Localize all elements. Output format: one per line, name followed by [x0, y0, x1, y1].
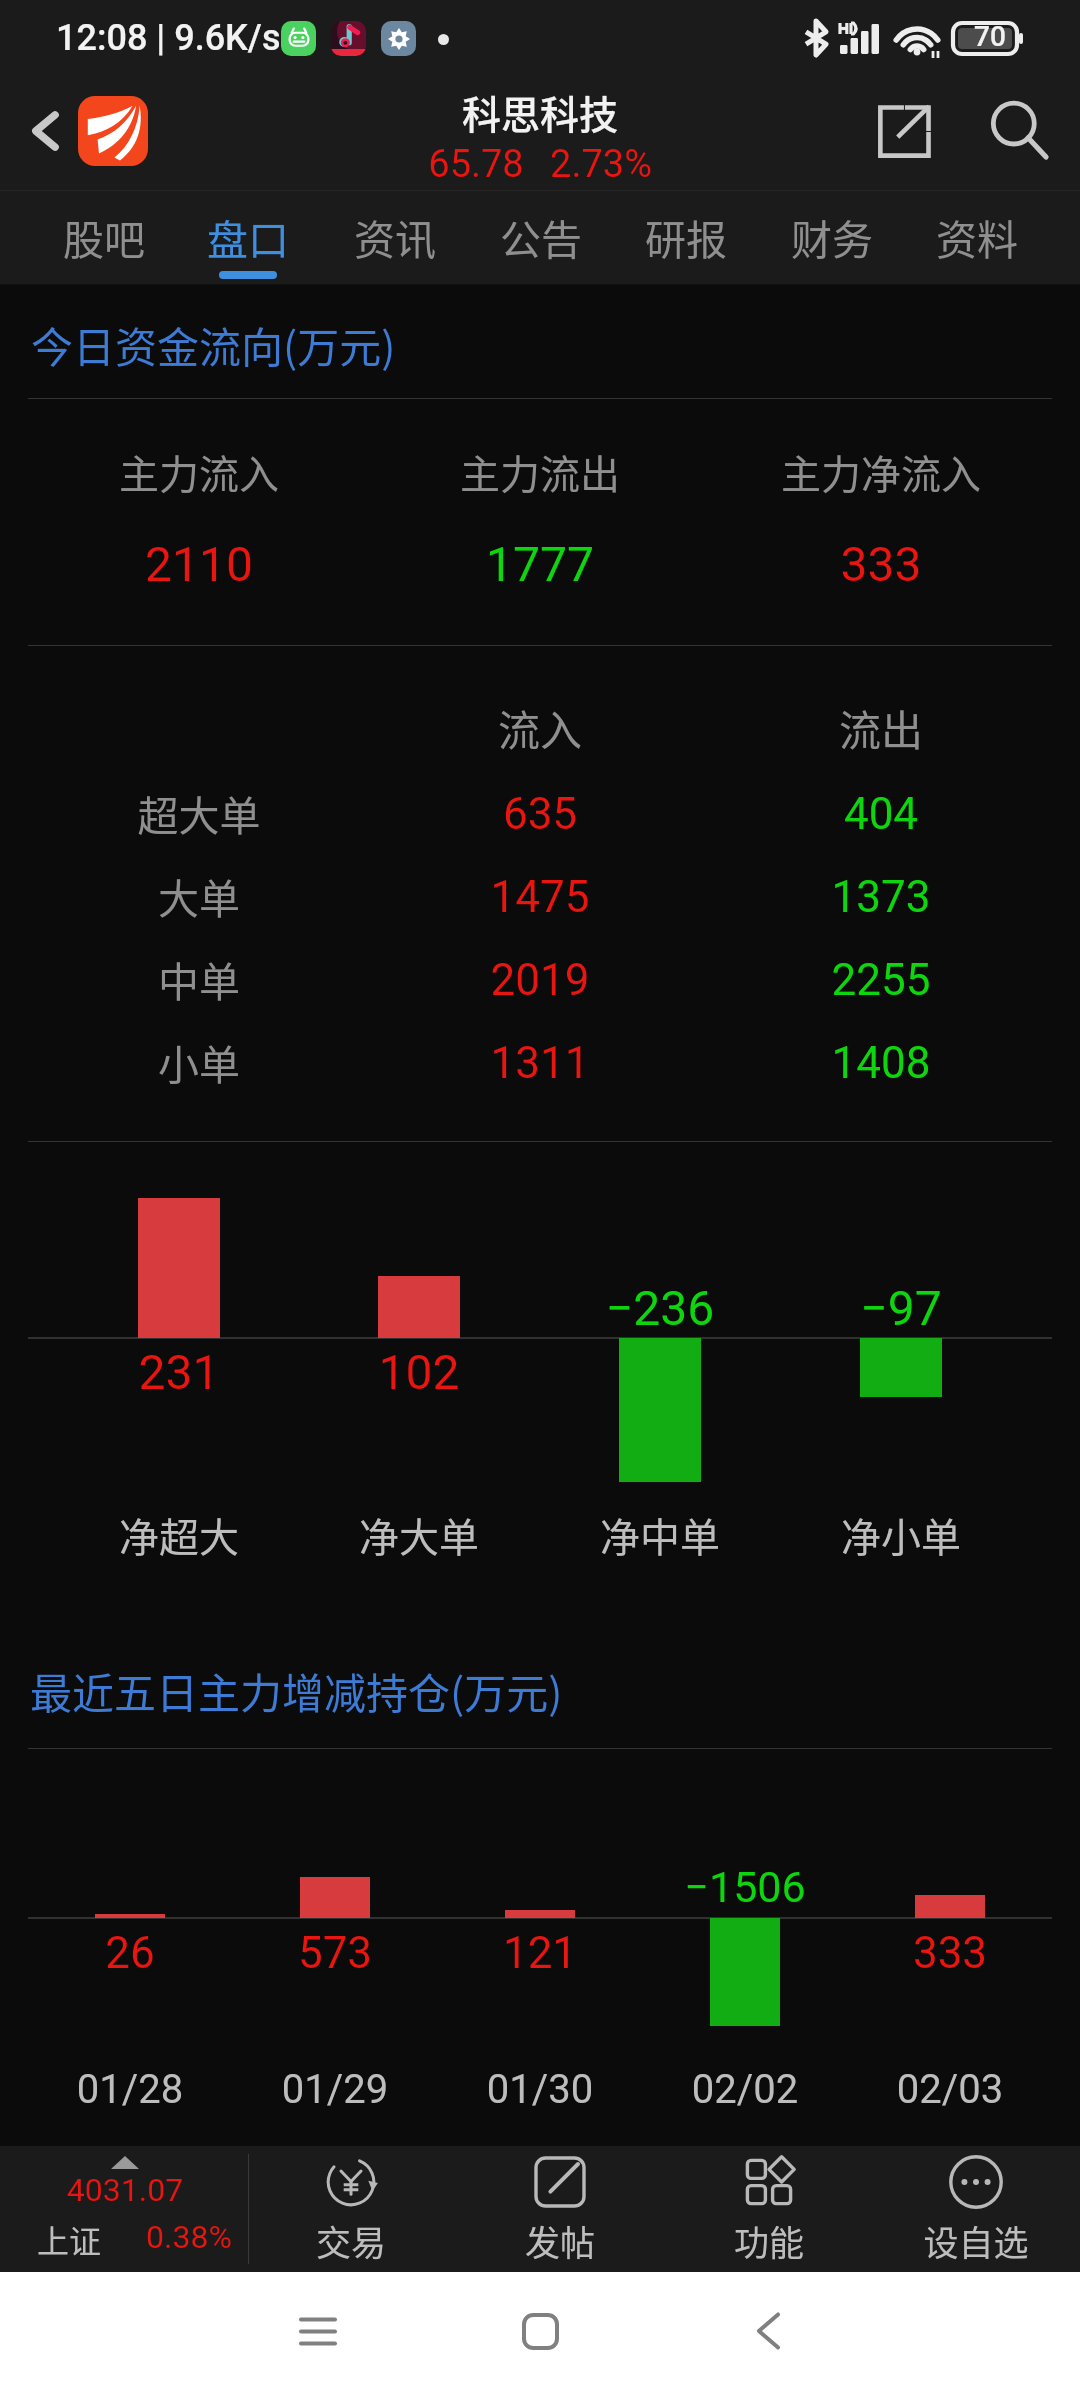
staticText: −236: [510, 1280, 810, 1336]
staticText: 今日资金流向(万元): [31, 314, 396, 375]
button[interactable]: [0, 191, 176, 285]
staticText: 股吧: [4, 207, 204, 266]
staticText: 主力流出: [390, 443, 690, 501]
staticText: 发帖: [460, 2215, 660, 2266]
button[interactable]: Share: [850, 72, 960, 190]
staticText: 净小单: [751, 1506, 1051, 1564]
staticText: 主力流入: [49, 443, 349, 501]
staticText: 01/30: [390, 2066, 690, 2113]
staticText: −97: [751, 1280, 1051, 1336]
staticText: 2019: [390, 954, 690, 1006]
button[interactable]: Back: [678, 2272, 858, 2400]
staticText: 1373: [731, 871, 1031, 923]
button[interactable]: [665, 2146, 873, 2272]
button[interactable]: [176, 191, 321, 285]
staticText: 1777: [390, 536, 690, 592]
staticText: 盘口: [148, 207, 348, 266]
staticText: 功能: [669, 2215, 869, 2266]
staticText: 70: [966, 20, 1014, 53]
button[interactable]: Search: [960, 72, 1080, 190]
staticText: −1506: [595, 1862, 895, 1912]
staticText: 573: [185, 1927, 485, 1979]
staticText: 小单: [49, 1032, 349, 1091]
staticText: 02/03: [800, 2066, 1080, 2113]
staticText: 2.73%: [501, 142, 701, 187]
staticText: 净大单: [269, 1506, 569, 1564]
button[interactable]: [468, 191, 613, 285]
staticText: 2255: [731, 954, 1031, 1006]
staticText: 1311: [390, 1037, 690, 1089]
button[interactable]: 4031.07: [0, 2146, 248, 2272]
button[interactable]: East Money home: [78, 96, 148, 166]
staticText: 121: [390, 1927, 690, 1979]
staticText: 12:08 | 9.6K/s: [56, 17, 281, 59]
staticText: 资讯: [295, 207, 495, 266]
staticText: 上证: [37, 2216, 102, 2262]
staticText: 635: [390, 788, 690, 840]
staticText: 404: [731, 788, 1031, 840]
staticText: 流入: [390, 697, 690, 758]
button[interactable]: [759, 191, 904, 285]
button[interactable]: [321, 191, 468, 285]
button[interactable]: [247, 2146, 455, 2272]
staticText: 0.38%: [146, 2218, 232, 2256]
staticText: 交易: [251, 2215, 451, 2266]
staticText: 财务: [732, 207, 932, 266]
button[interactable]: Home: [450, 2272, 630, 2400]
staticText: 资料: [877, 207, 1077, 266]
staticText: 科思科技: [290, 84, 790, 140]
staticText: 大单: [49, 866, 349, 925]
staticText: 1475: [390, 871, 690, 923]
staticText: 02/02: [595, 2066, 895, 2113]
button[interactable]: Recent apps: [228, 2272, 408, 2400]
staticText: 65.78: [376, 142, 576, 187]
staticText: 公告: [441, 207, 641, 266]
staticText: 01/29: [185, 2066, 485, 2113]
button[interactable]: Back: [0, 72, 90, 190]
staticText: 流出: [731, 697, 1031, 758]
button[interactable]: [872, 2146, 1080, 2272]
button[interactable]: [613, 191, 759, 285]
staticText: 净超大: [29, 1506, 329, 1564]
staticText: 01/28: [0, 2066, 280, 2113]
staticText: 净中单: [510, 1506, 810, 1564]
staticText: 研报: [586, 207, 786, 266]
button[interactable]: [904, 191, 1080, 285]
staticText: 102: [269, 1344, 569, 1400]
staticText: 1408: [731, 1037, 1031, 1089]
staticText: 设自选: [876, 2215, 1076, 2266]
staticText: 主力净流入: [731, 443, 1031, 501]
staticText: 26: [0, 1927, 280, 1979]
staticText: 超大单: [49, 783, 349, 842]
button[interactable]: [456, 2146, 664, 2272]
staticText: 中单: [49, 949, 349, 1008]
staticText: 最近五日主力增减持仓(万元): [30, 1660, 563, 1721]
staticText: 333: [731, 536, 1031, 592]
staticText: 333: [800, 1927, 1080, 1979]
staticText: 231: [29, 1344, 329, 1400]
staticText: 2110: [49, 536, 349, 592]
staticText: 4031.07: [1, 2171, 249, 2209]
